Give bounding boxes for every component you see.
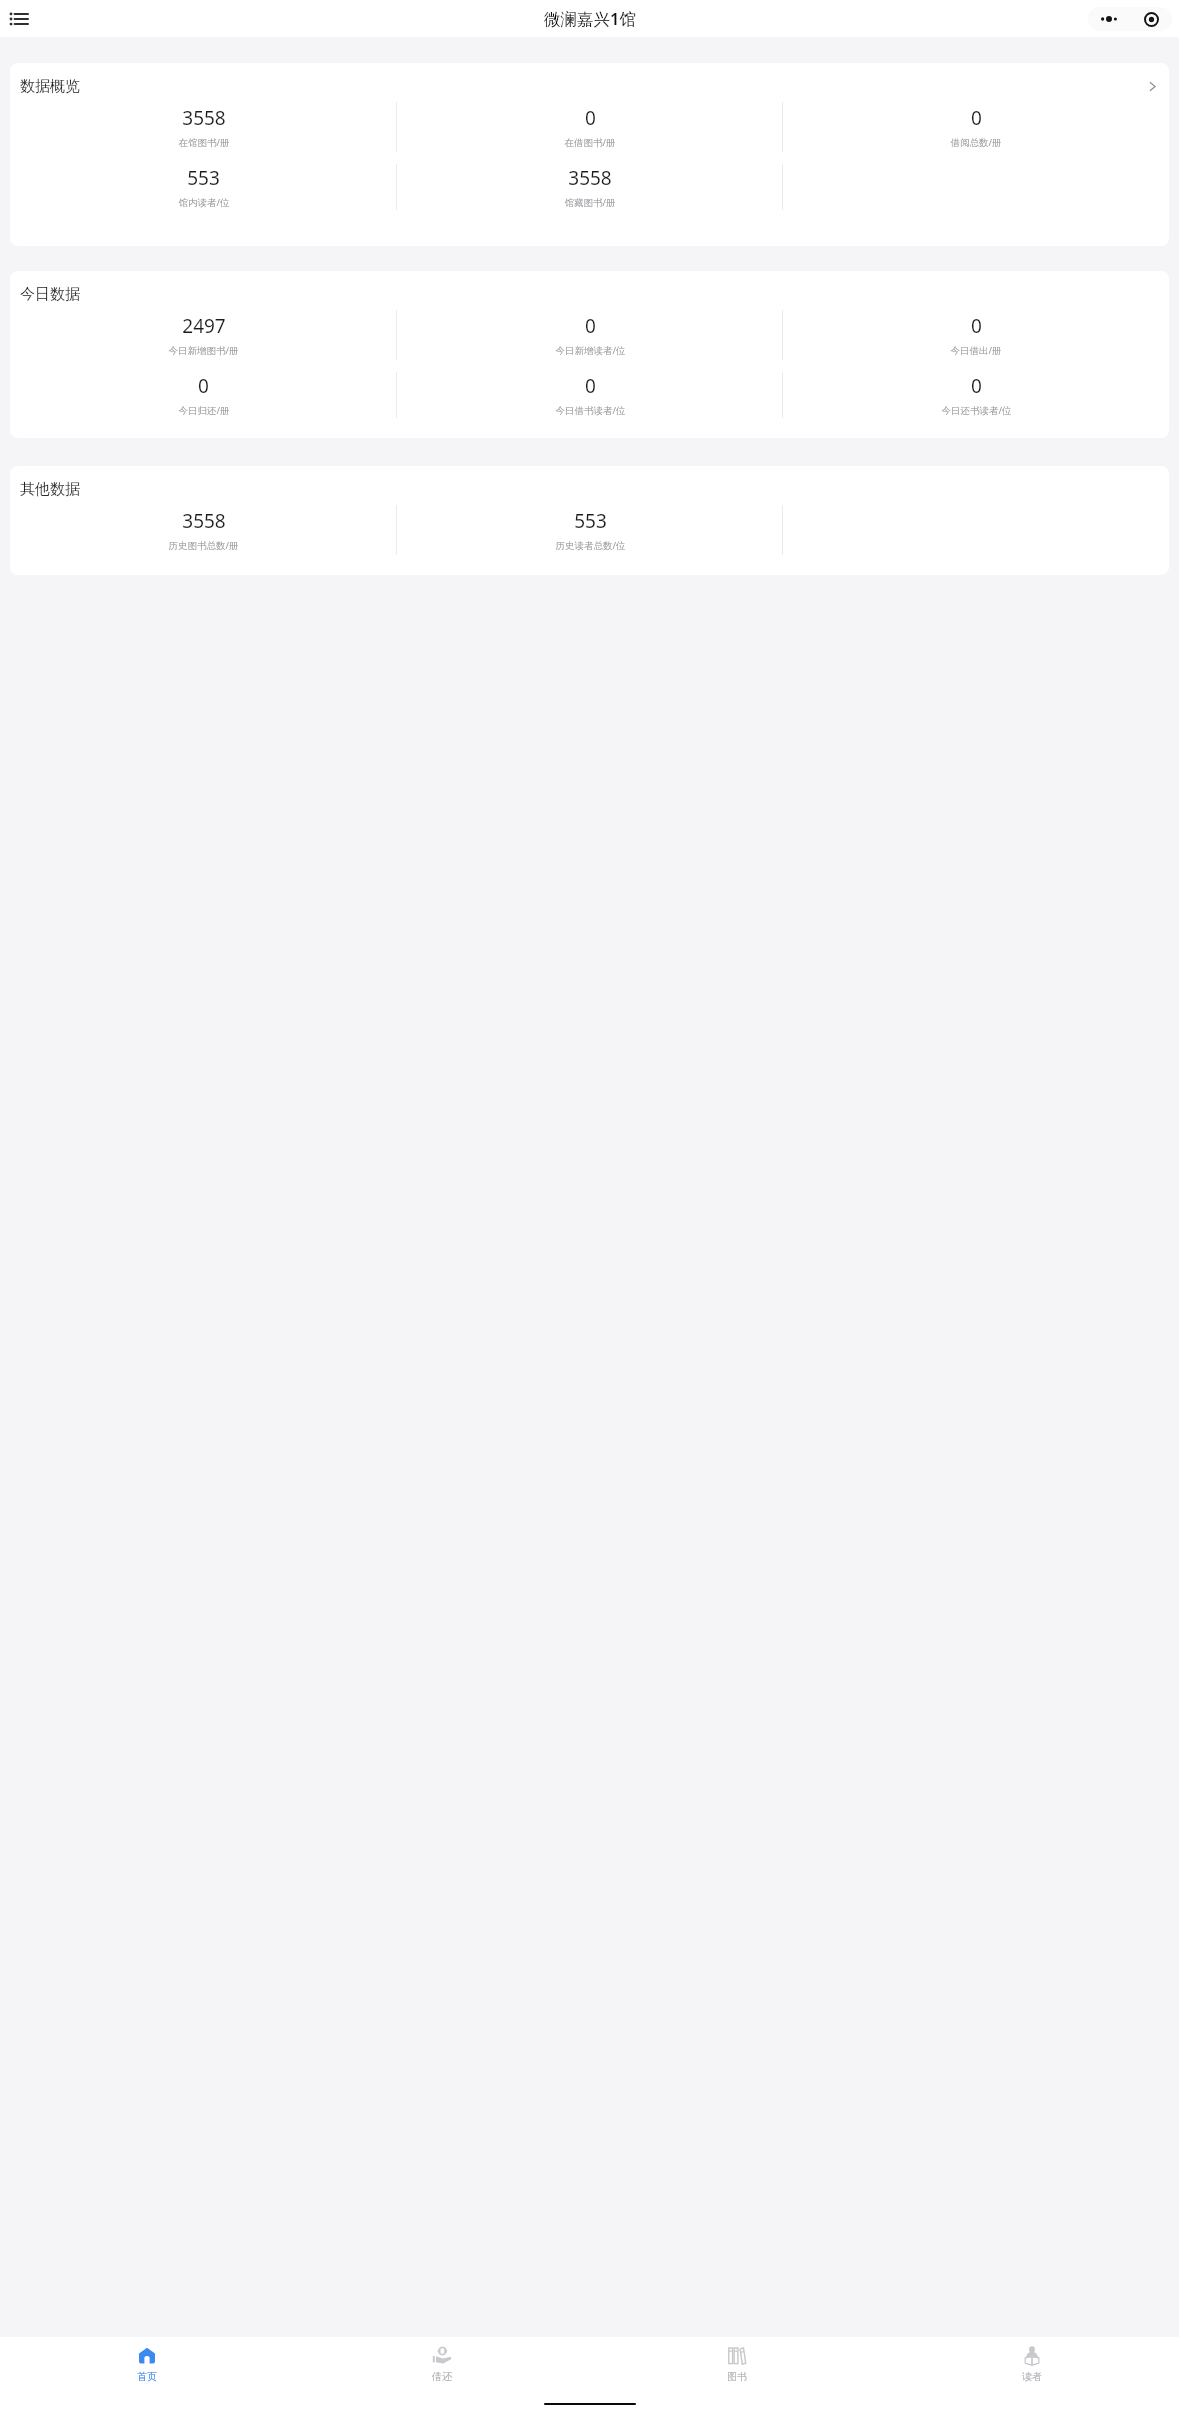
- button[interactable]: 借还: [294, 2337, 589, 2392]
- staticText: 其他数据: [20, 480, 80, 499]
- button[interactable]: 其他数据: [10, 466, 1169, 575]
- button[interactable]: 读者: [884, 2337, 1179, 2392]
- staticText: 553: [187, 165, 220, 191]
- staticText: 历史读者总数/位: [555, 539, 626, 552]
- button[interactable]: 图书: [589, 2337, 884, 2392]
- staticText: 今日新增图书/册: [168, 344, 239, 357]
- staticText: 今日还书读者/位: [941, 404, 1012, 417]
- button[interactable]: Close mini program: [1130, 7, 1172, 31]
- staticText: 3558: [182, 105, 226, 131]
- staticText: 数据概览: [20, 77, 80, 96]
- button[interactable]: Menu: [9, 9, 29, 29]
- staticText: 3558: [568, 165, 612, 191]
- staticText: 馆藏图书/册: [564, 196, 616, 209]
- staticText: 0: [198, 373, 209, 399]
- button[interactable]: 数据概览: [10, 63, 1169, 246]
- staticText: 3558: [182, 508, 226, 534]
- staticText: 0: [585, 105, 596, 131]
- staticText: 0: [585, 313, 596, 339]
- staticText: 0: [585, 373, 596, 399]
- staticText: 微澜嘉兴1馆: [544, 7, 636, 30]
- staticText: 今日归还/册: [178, 404, 230, 417]
- staticText: 今日数据: [20, 285, 80, 304]
- staticText: 在借图书/册: [564, 136, 616, 149]
- staticText: 读者: [1022, 2370, 1042, 2383]
- staticText: 0: [971, 373, 982, 399]
- staticText: 在馆图书/册: [178, 136, 230, 149]
- staticText: 今日借书读者/位: [555, 404, 626, 417]
- staticText: 图书: [727, 2370, 747, 2383]
- staticText: 553: [574, 508, 607, 534]
- staticText: 历史图书总数/册: [168, 539, 239, 552]
- staticText: 借阅总数/册: [950, 136, 1002, 149]
- staticText: 0: [971, 313, 982, 339]
- staticText: 今日借出/册: [950, 344, 1002, 357]
- staticText: 借还: [432, 2370, 452, 2383]
- staticText: 0: [971, 105, 982, 131]
- staticText: 今日新增读者/位: [555, 344, 626, 357]
- staticText: 2497: [182, 313, 226, 339]
- button[interactable]: More options: [1088, 7, 1130, 31]
- button[interactable]: 今日数据: [10, 271, 1169, 438]
- staticText: 首页: [137, 2370, 157, 2383]
- button[interactable]: 首页: [0, 2337, 294, 2392]
- staticText: 馆内读者/位: [178, 196, 230, 209]
